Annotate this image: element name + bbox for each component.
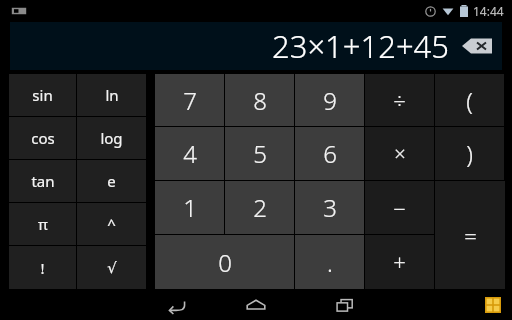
staticText: 1: [183, 191, 197, 224]
staticText: (: [466, 84, 473, 117]
staticText: 6: [323, 137, 337, 170]
button[interactable]: e: [77, 160, 146, 202]
staticText: ): [466, 137, 473, 170]
button[interactable]: tan: [9, 160, 76, 202]
button[interactable]: 7: [155, 74, 224, 126]
staticText: 2: [253, 191, 267, 224]
button[interactable]: 9: [295, 74, 364, 126]
button[interactable]: ^: [77, 203, 146, 245]
staticText: sin: [32, 85, 53, 105]
button[interactable]: 6: [295, 127, 364, 180]
button[interactable]: sin: [9, 74, 76, 116]
staticText: 9: [323, 84, 337, 117]
button[interactable]: ×: [365, 127, 434, 180]
button[interactable]: +: [365, 235, 434, 289]
button[interactable]: 8: [225, 74, 294, 126]
staticText: cos: [31, 128, 55, 148]
staticText: −: [393, 193, 406, 223]
staticText: 7: [183, 84, 197, 117]
staticText: √: [107, 259, 117, 276]
staticText: log: [100, 128, 123, 148]
staticText: 8: [253, 84, 267, 117]
button[interactable]: π: [9, 203, 76, 245]
button[interactable]: −: [365, 181, 434, 234]
staticText: ln: [105, 85, 119, 105]
staticText: tan: [31, 171, 55, 191]
staticText: 14:44: [473, 3, 504, 19]
button[interactable]: 0: [155, 235, 294, 289]
button[interactable]: 2: [225, 181, 294, 234]
button[interactable]: ln: [77, 74, 146, 116]
button[interactable]: log: [77, 117, 146, 159]
button[interactable]: 4: [155, 127, 224, 180]
button[interactable]: ): [435, 127, 504, 180]
button[interactable]: (: [435, 74, 504, 126]
staticText: +: [393, 247, 406, 277]
staticText: ^: [107, 214, 116, 234]
staticText: 5: [253, 137, 267, 170]
staticText: 23×1+12+45: [272, 25, 450, 67]
button[interactable]: Delete: [462, 36, 492, 56]
staticText: .: [327, 246, 333, 279]
staticText: ×: [394, 140, 406, 167]
button[interactable]: App shortcut: [480, 292, 506, 318]
button[interactable]: .: [295, 235, 364, 289]
staticText: 4: [183, 137, 197, 170]
staticText: π: [38, 214, 48, 234]
button[interactable]: √: [77, 246, 146, 289]
button[interactable]: Home: [239, 289, 273, 320]
staticText: !: [40, 258, 45, 278]
button[interactable]: !: [9, 246, 76, 289]
staticText: e: [107, 171, 116, 191]
staticText: ÷: [393, 85, 406, 115]
button[interactable]: ÷: [365, 74, 434, 126]
button[interactable]: Recent apps: [328, 289, 362, 320]
staticText: 3: [323, 191, 337, 224]
button[interactable]: =: [435, 181, 505, 289]
button[interactable]: 5: [225, 127, 294, 180]
button[interactable]: Back: [160, 289, 194, 320]
staticText: 0: [218, 246, 232, 279]
staticText: =: [464, 220, 477, 250]
button[interactable]: 3: [295, 181, 364, 234]
button[interactable]: 1: [155, 181, 224, 234]
button[interactable]: cos: [9, 117, 76, 159]
